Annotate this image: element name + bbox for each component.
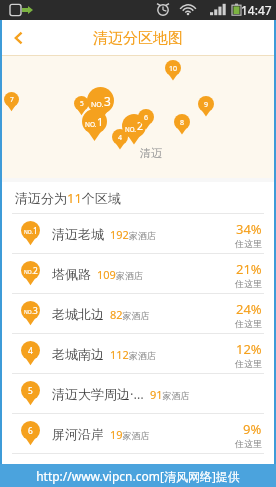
staticText: 7 bbox=[10, 95, 14, 104]
button[interactable]: 6 bbox=[2, 414, 274, 454]
staticText: http://www.vipcn.com[清风网络]提供 bbox=[36, 468, 240, 484]
staticText: 清迈分区地图 bbox=[93, 29, 183, 48]
staticText: 1 bbox=[33, 225, 38, 236]
button[interactable]: NO. bbox=[2, 214, 274, 254]
staticText: 5 bbox=[80, 99, 84, 108]
button[interactable]: 5 bbox=[2, 374, 274, 414]
button[interactable]: Back bbox=[2, 21, 36, 55]
staticText: 112家酒店 bbox=[110, 347, 156, 362]
staticText: 清迈分为11个区域 bbox=[15, 189, 121, 207]
button[interactable]: NO. bbox=[2, 254, 274, 294]
staticText: 塔佩路 bbox=[52, 266, 91, 282]
staticText: 3 bbox=[104, 93, 111, 109]
staticText: NO. bbox=[85, 120, 97, 129]
staticText: 住这里 bbox=[235, 318, 262, 329]
staticText: 住这里 bbox=[235, 238, 262, 249]
staticText: 5 bbox=[28, 385, 33, 396]
staticText: NO. bbox=[24, 269, 33, 276]
staticText: 10 bbox=[169, 63, 178, 73]
staticText: 109家酒店 bbox=[97, 267, 143, 282]
staticText: NO. bbox=[24, 229, 33, 236]
staticText: 1 bbox=[97, 114, 104, 129]
staticText: 6 bbox=[28, 425, 33, 436]
staticText: 住这里 bbox=[235, 358, 262, 369]
staticText: 清迈老城 bbox=[52, 226, 104, 242]
staticText: 82家酒店 bbox=[110, 307, 150, 322]
staticText: 住这里 bbox=[235, 278, 262, 289]
staticText: 24% bbox=[236, 300, 262, 318]
staticText: 清迈大学周边·… bbox=[52, 385, 144, 403]
button[interactable]: NO. bbox=[2, 294, 274, 334]
staticText: 6 bbox=[144, 112, 149, 122]
staticText: 老城南边 bbox=[52, 346, 104, 362]
staticText: 192家酒店 bbox=[110, 227, 156, 242]
staticText: 屏河沿岸 bbox=[52, 426, 104, 442]
staticText: 3 bbox=[33, 305, 38, 316]
staticText: 9 bbox=[204, 99, 209, 109]
staticText: 2 bbox=[137, 119, 144, 133]
staticText: 9% bbox=[243, 420, 262, 438]
staticText: 清迈 bbox=[140, 146, 162, 160]
staticText: 住这里 bbox=[235, 438, 262, 449]
staticText: 21% bbox=[236, 260, 262, 278]
staticText: 34% bbox=[236, 220, 262, 238]
staticText: 14:47 bbox=[241, 2, 272, 18]
staticText: 12% bbox=[236, 340, 262, 358]
staticText: 4 bbox=[118, 132, 123, 142]
staticText: NO. bbox=[91, 99, 104, 109]
staticText: 老城北边 bbox=[52, 306, 104, 322]
staticText: 2 bbox=[33, 265, 38, 276]
staticText: NO. bbox=[24, 309, 33, 316]
staticText: NO. bbox=[125, 125, 137, 133]
staticText: 4 bbox=[28, 345, 33, 356]
button[interactable]: 4 bbox=[2, 334, 274, 374]
staticText: 8 bbox=[180, 117, 185, 127]
staticText: 91家酒店 bbox=[150, 387, 190, 402]
staticText: 19家酒店 bbox=[110, 427, 150, 442]
